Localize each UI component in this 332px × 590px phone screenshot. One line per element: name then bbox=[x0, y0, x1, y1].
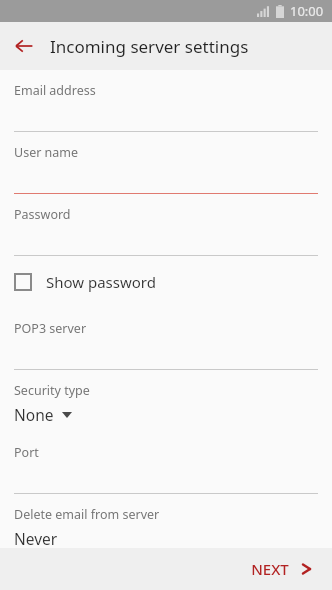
button[interactable]: NEXT bbox=[245, 553, 318, 585]
staticText: Show password bbox=[46, 272, 156, 292]
staticText: Delete email from server bbox=[14, 506, 160, 523]
staticText: NEXT bbox=[251, 559, 289, 579]
staticText: Incoming server settings bbox=[50, 35, 249, 58]
button[interactable]: Password bbox=[0, 194, 332, 256]
button[interactable]: Email address bbox=[0, 70, 332, 132]
button[interactable]: Delete email from server bbox=[0, 494, 332, 548]
button[interactable]: User name bbox=[0, 132, 332, 194]
button[interactable]: Navigate up bbox=[8, 30, 40, 62]
staticText: User name bbox=[14, 144, 79, 161]
button[interactable]: POP3 server bbox=[0, 308, 332, 370]
button[interactable]: Port bbox=[0, 432, 332, 494]
staticText: Security type bbox=[14, 382, 90, 399]
staticText: 10:00 bbox=[290, 2, 324, 20]
staticText: POP3 server bbox=[14, 320, 87, 337]
staticText: Port bbox=[14, 444, 39, 461]
button[interactable]: Show password bbox=[0, 256, 332, 308]
staticText: Password bbox=[14, 206, 71, 223]
staticText: Never bbox=[14, 528, 58, 548]
button[interactable]: Security type bbox=[0, 370, 332, 432]
staticText: None bbox=[14, 404, 54, 425]
staticText: Email address bbox=[14, 82, 96, 99]
